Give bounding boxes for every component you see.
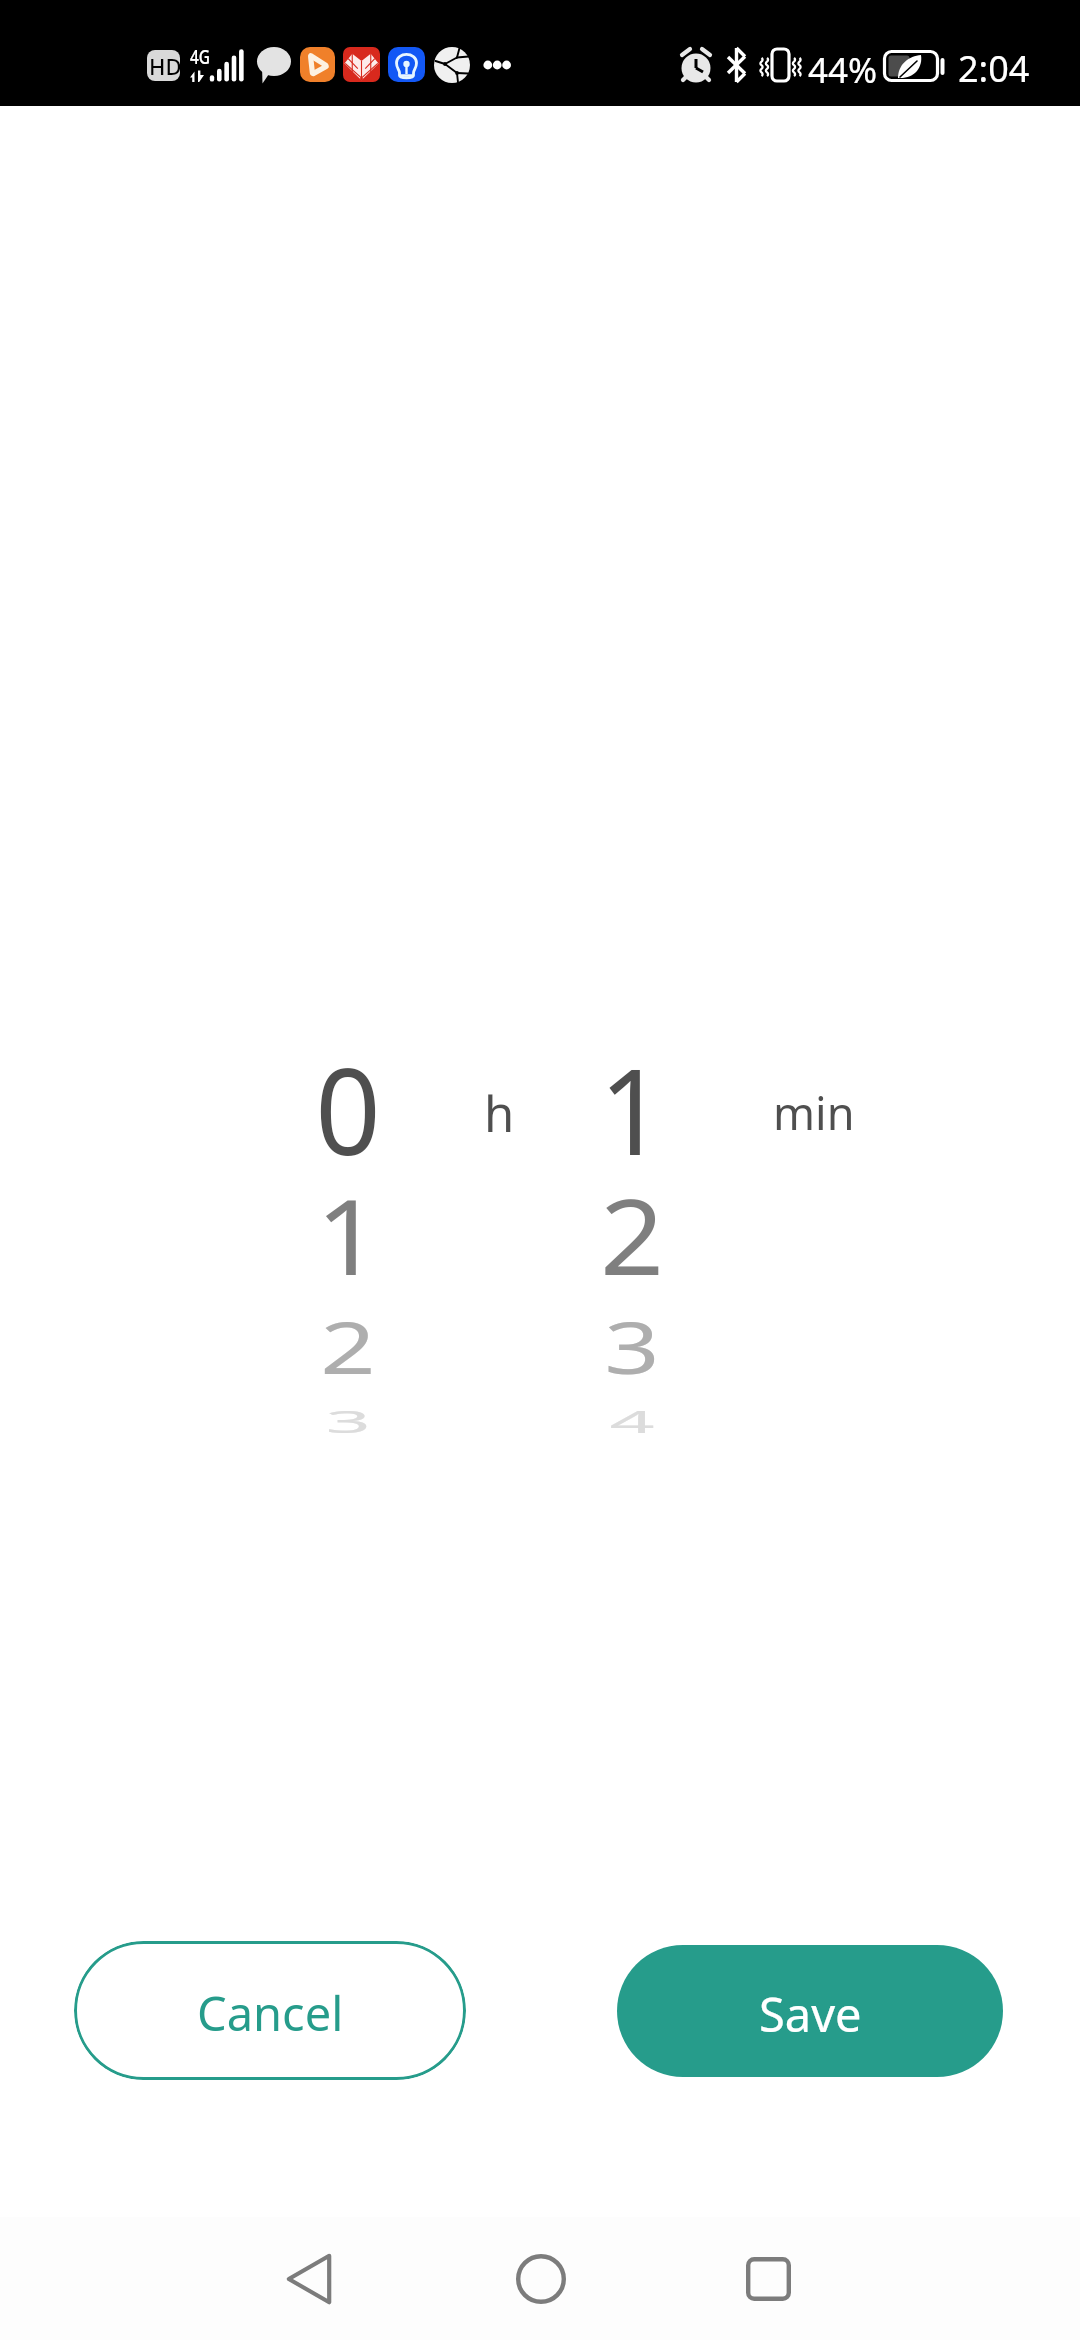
staticText: 4G (190, 41, 210, 69)
staticText: 3 (268, 1399, 428, 1443)
staticText: 0 (232, 1029, 464, 1190)
staticText: 2:04 (958, 44, 1030, 93)
staticText: 44% (808, 46, 878, 94)
button[interactable]: Hours (228, 1040, 468, 1460)
button[interactable]: Save (617, 1945, 1003, 2077)
button[interactable]: Recents (723, 2235, 813, 2323)
button[interactable]: Back (264, 2235, 354, 2323)
staticText: h (484, 1080, 515, 1147)
staticText: Cancel (197, 1981, 344, 2045)
button[interactable]: Minutes (512, 1040, 752, 1460)
staticText: 1 (234, 1164, 462, 1306)
button[interactable]: Cancel (74, 1941, 466, 2080)
staticText: min (773, 1082, 855, 1143)
staticText: 4 (552, 1399, 712, 1443)
staticText: 2 (250, 1298, 446, 1395)
staticText: Save (759, 1982, 862, 2046)
staticText: 2 (518, 1164, 746, 1306)
staticText: 1 (516, 1029, 748, 1190)
staticText: 3 (534, 1298, 730, 1395)
staticText: HD (149, 51, 180, 81)
button[interactable]: Home (496, 2235, 586, 2323)
